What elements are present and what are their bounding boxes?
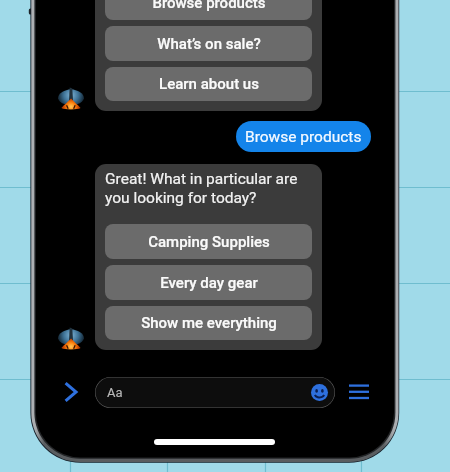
button[interactable]: Camping Supplies xyxy=(105,224,312,259)
button[interactable]: Browse products xyxy=(236,121,371,152)
staticText: Every day gear xyxy=(160,274,258,292)
staticText: Great! What in particular are you lookin… xyxy=(105,170,298,207)
button[interactable]: Send xyxy=(62,380,80,404)
button[interactable]: Browse products xyxy=(105,0,312,20)
button[interactable]: Show me everything xyxy=(105,306,312,340)
button[interactable]: Menu xyxy=(349,384,369,398)
staticText: Aa xyxy=(107,385,123,400)
button[interactable]: Emoji xyxy=(311,384,328,401)
button[interactable]: Learn about us xyxy=(105,67,312,101)
staticText: Browse products xyxy=(152,0,266,12)
staticText: Browse products xyxy=(245,128,362,146)
button[interactable]: Aa xyxy=(95,377,335,408)
staticText: Camping Supplies xyxy=(148,233,270,251)
button[interactable]: What’s on sale? xyxy=(105,26,312,61)
button[interactable]: Every day gear xyxy=(105,265,312,300)
staticText: Learn about us xyxy=(159,75,259,93)
staticText: What’s on sale? xyxy=(157,35,261,53)
staticText: Show me everything xyxy=(141,314,277,332)
